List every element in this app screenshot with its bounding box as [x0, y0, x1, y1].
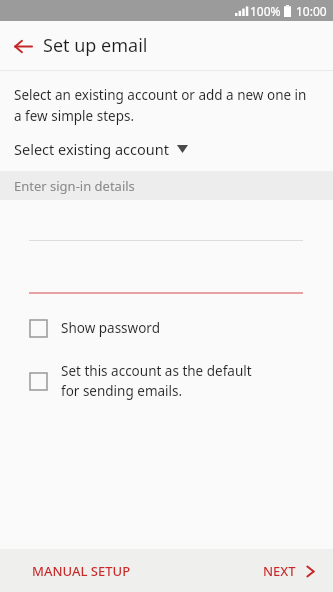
- staticText: Show password: [61, 319, 160, 337]
- button[interactable]: NEXT: [255, 554, 323, 588]
- staticText: Select an existing account or add a new …: [14, 86, 307, 125]
- staticText: Set this account as the default for send…: [61, 362, 252, 400]
- staticText: MANUAL SETUP: [32, 562, 131, 580]
- staticText: 10:00: [296, 3, 327, 19]
- staticText: Select existing account: [14, 139, 169, 159]
- staticText: Set up email: [43, 33, 148, 58]
- staticText: Enter sign-in details: [14, 177, 135, 195]
- button[interactable]: Show password: [0, 315, 333, 341]
- staticText: 100%: [250, 3, 281, 19]
- staticText: NEXT: [263, 562, 296, 580]
- button[interactable]: MANUAL SETUP: [22, 554, 141, 588]
- button[interactable]: Back: [6, 29, 40, 63]
- button[interactable]: Set this account as the default for send…: [0, 358, 333, 404]
- button[interactable]: Select existing account: [0, 137, 333, 165]
